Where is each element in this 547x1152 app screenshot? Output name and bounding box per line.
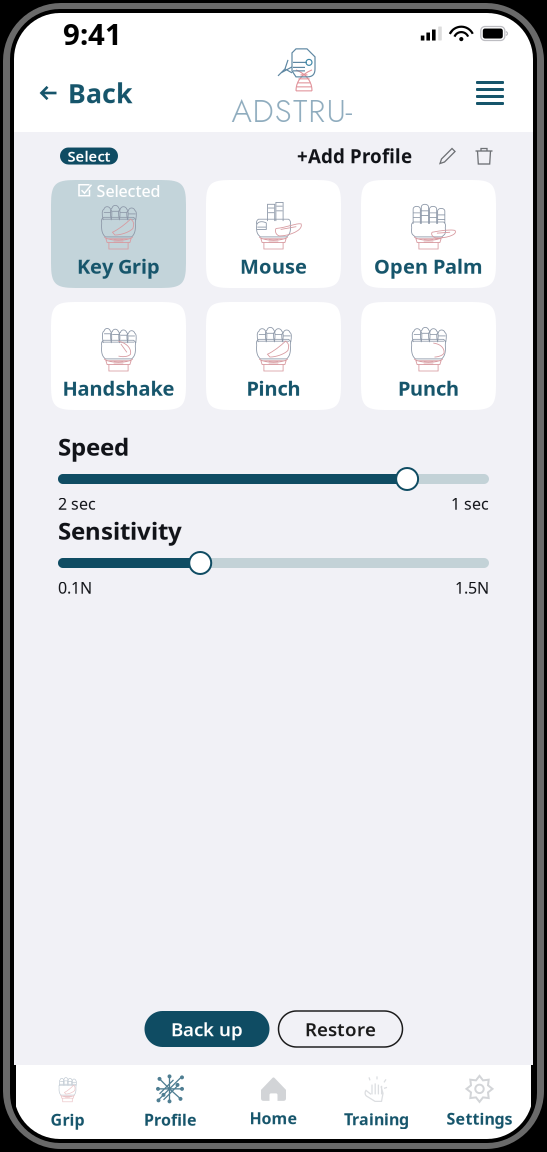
staticText: Select — [67, 146, 110, 166]
staticText: Pinch — [246, 375, 300, 401]
staticText: Back up — [171, 1017, 243, 1041]
button[interactable]: Pinch — [206, 302, 341, 410]
button[interactable]: Restore — [278, 1011, 402, 1047]
button[interactable]: Profile — [119, 1071, 222, 1133]
staticText: Home — [249, 1107, 297, 1129]
button[interactable]: Mouse — [206, 180, 341, 288]
staticText: 1.5N — [455, 577, 489, 598]
button[interactable]: Selected — [51, 180, 186, 288]
button[interactable]: Back — [38, 71, 135, 115]
staticText: Punch — [398, 375, 459, 401]
staticText: Sensitivity — [58, 515, 182, 546]
button[interactable]: Edit — [436, 144, 458, 168]
staticText: Selected — [96, 180, 160, 201]
button[interactable]: Punch — [361, 302, 496, 410]
button[interactable]: Handshake — [51, 302, 186, 410]
staticText: Key Grip — [77, 253, 160, 279]
button[interactable]: Grip — [16, 1071, 119, 1133]
staticText: Handshake — [62, 375, 174, 401]
button[interactable]: +Add Profile — [297, 144, 412, 168]
button[interactable]: Menu — [469, 71, 511, 115]
staticText: 9:41 — [63, 14, 122, 53]
button[interactable]: Back up — [144, 1011, 269, 1047]
staticText: Profile — [144, 1109, 197, 1130]
staticText: Restore — [305, 1017, 376, 1041]
staticText: Open Palm — [374, 253, 483, 279]
staticText: 2 sec — [58, 493, 96, 514]
button[interactable]: Select — [60, 147, 118, 164]
staticText: Mouse — [240, 253, 307, 279]
button[interactable]: Settings — [428, 1071, 531, 1133]
button[interactable]: Training — [325, 1071, 428, 1133]
staticText: Back — [68, 75, 133, 111]
button[interactable]: Home — [222, 1071, 325, 1133]
staticText: 1 sec — [451, 493, 489, 514]
staticText: +Add Profile — [297, 144, 412, 168]
staticText: ADSTRUM — [231, 88, 373, 134]
button[interactable]: Delete — [472, 144, 494, 168]
staticText: Training — [344, 1108, 409, 1130]
staticText: 0.1N — [58, 577, 92, 598]
staticText: Settings — [446, 1108, 512, 1129]
staticText: Grip — [50, 1109, 84, 1130]
button[interactable]: Open Palm — [361, 180, 496, 288]
staticText: Speed — [58, 431, 129, 462]
